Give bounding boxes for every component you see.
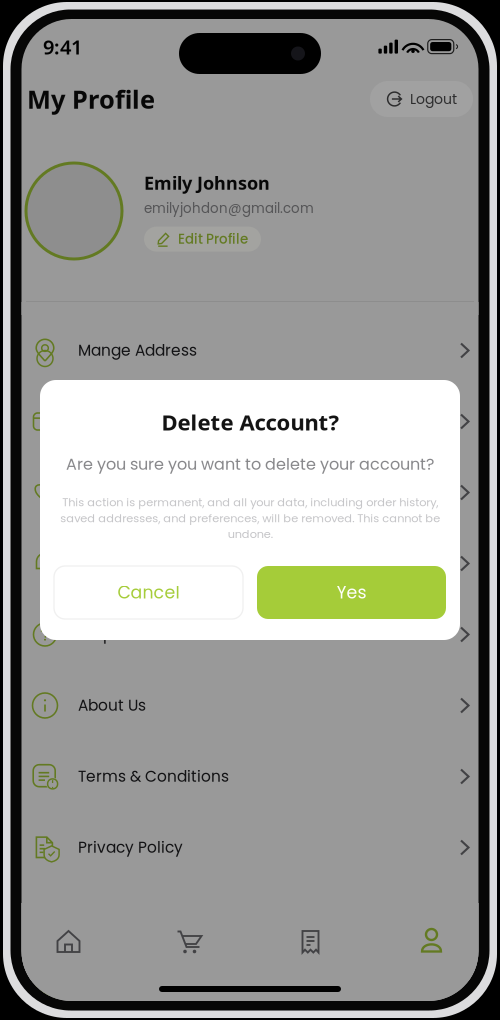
staticText: This action is permanent, and all your d… xyxy=(60,494,440,542)
button[interactable]: Profile xyxy=(371,903,492,981)
button[interactable]: Edit Profile xyxy=(144,227,261,252)
staticText: Logout xyxy=(410,89,457,109)
staticText: Payment Methods xyxy=(78,411,219,432)
button[interactable]: Terms & Conditions xyxy=(8,741,492,812)
staticText: About Us xyxy=(78,695,146,716)
staticText: emilyjohdon@gmail.com xyxy=(144,199,314,218)
staticText: Delete Account? xyxy=(161,407,338,437)
button[interactable]: Logout xyxy=(370,81,473,117)
button[interactable]: Yes xyxy=(257,566,446,619)
staticText: Terms & Conditions xyxy=(78,766,229,787)
staticText: Are you sure you want to delete your acc… xyxy=(66,453,434,475)
button[interactable]: About Us xyxy=(8,670,492,741)
button[interactable]: Share App xyxy=(8,954,492,1020)
button[interactable]: Help Center xyxy=(8,599,492,670)
button[interactable]: Rate Us xyxy=(8,883,492,954)
button[interactable]: Payment Methods xyxy=(8,386,492,457)
button[interactable]: Notifications xyxy=(8,528,492,599)
staticText: 9:41 xyxy=(43,33,82,60)
staticText: My Profile xyxy=(27,82,155,116)
staticText: Mange Address xyxy=(78,340,197,361)
button[interactable]: Cart xyxy=(129,903,250,981)
staticText: Edit Profile xyxy=(178,230,248,248)
button[interactable]: Orders xyxy=(250,903,371,981)
staticText: Emily Johnson xyxy=(144,170,270,195)
button[interactable]: My Wishlist xyxy=(8,457,492,528)
button[interactable]: Cancel xyxy=(54,566,243,619)
staticText: Yes xyxy=(336,580,366,605)
button[interactable]: Privacy Policy xyxy=(8,812,492,883)
staticText: Privacy Policy xyxy=(78,837,183,858)
button[interactable]: Home xyxy=(8,903,129,981)
staticText: Help Center xyxy=(78,624,171,645)
button[interactable]: Mange Address xyxy=(8,315,492,386)
staticText: My Wishlist xyxy=(78,482,163,503)
staticText: Cancel xyxy=(117,580,179,605)
